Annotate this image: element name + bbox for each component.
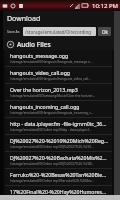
staticText: /storage/emulated/0/Online mp3/DJ%20027%… [10, 145, 94, 149]
button[interactable]: hangouts_incoming_call.ogg [5, 101, 112, 117]
staticText: Over the horizon_2013.mp3 [10, 86, 78, 93]
staticText: /storage/emulated/0/Online mp3/Farruko%2… [10, 179, 95, 183]
staticText: /storage/emulated/0/Hangouts/hangouts_in… [10, 111, 94, 115]
staticText: Audio Files [17, 40, 51, 49]
staticText: DJ%20027%20-%20Bachata%20Mix%20P… [10, 154, 109, 161]
staticText: DJ%20027%20-%2010%20Mich%20Reggaeto… [10, 137, 109, 144]
button[interactable]: DJ%20027%20-%20Bachata%20Mix%20P… [5, 152, 112, 168]
staticText: Save As [7, 29, 20, 34]
staticText: http - data.iplayer.fm -file-igmm0tc_361… [10, 120, 109, 127]
staticText: Farruko%20-%20Besas%20Tan%20Bien%2… [10, 171, 109, 178]
button[interactable]: hangouts_message.ogg [5, 50, 112, 66]
staticText: /storage/emulated/0/Hangouts/hangouts_me… [10, 60, 93, 64]
staticText: /storage/emulated/0/Samsung/Music/Over t… [10, 94, 96, 98]
staticText: hangouts_incoming_call.ogg [10, 103, 80, 110]
staticText: /storage/emulated/0/Online mp3/DJ%20027%… [10, 162, 95, 166]
staticText: /storage/emulated/0/Hangouts/hangouts_vi… [10, 77, 91, 81]
staticText: /storage/emulated/0/Online mp3/http - da… [10, 128, 92, 132]
staticText: Ok [102, 29, 108, 35]
button[interactable]: 17%20Final%20-%20Hay%20Humores%20… [5, 186, 112, 195]
other: Audio files folder [7, 41, 14, 48]
button[interactable]: http - data.iplayer.fm -file-igmm0tc_361… [5, 118, 112, 134]
button[interactable]: Over the horizon_2013.mp3 [5, 84, 112, 100]
button[interactable]: Farruko%20-%20Besas%20Tan%20Bien%2… [5, 169, 112, 185]
staticText: 10:12 PM [92, 2, 118, 10]
staticText: 17%20Final%20-%20Hay%20Humores%20… [10, 188, 109, 195]
button[interactable]: Ok [98, 27, 111, 36]
button[interactable]: hangouts_video_call.ogg [5, 67, 112, 83]
staticText: Download [7, 14, 41, 24]
button[interactable]: DJ%20027%20-%2010%20Mich%20Reggaeto… [5, 135, 112, 151]
staticText: hangouts_message.ogg [10, 52, 69, 59]
button[interactable]: Audio files folder [3, 38, 114, 50]
staticText: /storage/emulated/0/recording [25, 29, 91, 35]
staticText: hangouts_video_call.ogg [10, 69, 71, 76]
button[interactable]: /storage/emulated/0/recording [23, 27, 96, 36]
